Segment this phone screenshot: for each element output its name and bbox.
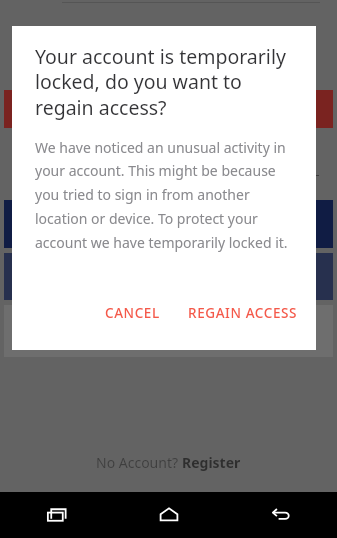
staticText: CANCEL [105,304,160,322]
button[interactable]: No Account? [90,450,247,475]
staticText: Register [182,453,241,472]
button[interactable]: Back [225,492,337,538]
staticText: No Account? [96,453,182,472]
button[interactable] [4,200,333,248]
button[interactable]: Home [113,492,225,538]
button[interactable]: l? [307,163,319,175]
button[interactable] [4,90,333,128]
button[interactable]: REGAIN ACCESS [178,296,308,330]
button[interactable]: Recent apps [0,492,113,538]
staticText: We have noticed an unusual activity in y… [35,138,290,253]
staticText: REGAIN ACCESS [188,304,298,322]
button[interactable]: CANCEL [95,296,170,330]
button[interactable] [4,253,333,300]
staticText: Your account is temporarily locked, do y… [35,43,296,121]
